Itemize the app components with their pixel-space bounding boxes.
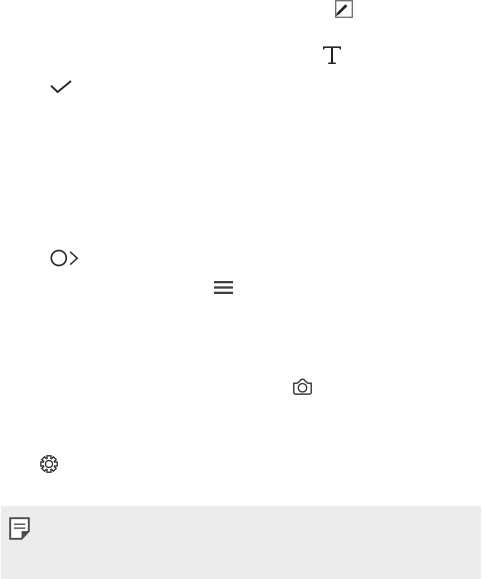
button[interactable]: Camera: [293, 378, 312, 395]
button[interactable]: Done: [50, 80, 72, 93]
button[interactable]: Formatting: [323, 46, 341, 64]
button[interactable]: Notes: [9, 517, 30, 540]
button[interactable]: Menu: [214, 281, 233, 294]
button[interactable]: Settings: [40, 455, 58, 473]
button[interactable]: New Note: [335, 0, 353, 18]
button[interactable]: Checklist: [50, 249, 78, 267]
